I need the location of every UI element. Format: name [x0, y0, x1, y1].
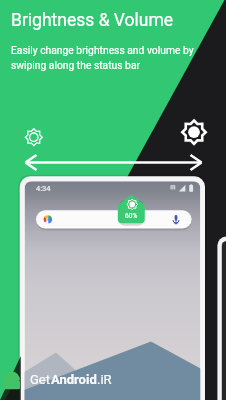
staticText: Android [51, 372, 97, 387]
staticText: 4:34 [36, 184, 51, 193]
staticText: 60% [125, 212, 138, 220]
staticText: Get [30, 372, 51, 387]
staticText: Brightness & Volume [11, 10, 174, 31]
staticText: .iR [97, 372, 112, 387]
staticText: Easily change brightness and volume by s… [11, 44, 194, 71]
